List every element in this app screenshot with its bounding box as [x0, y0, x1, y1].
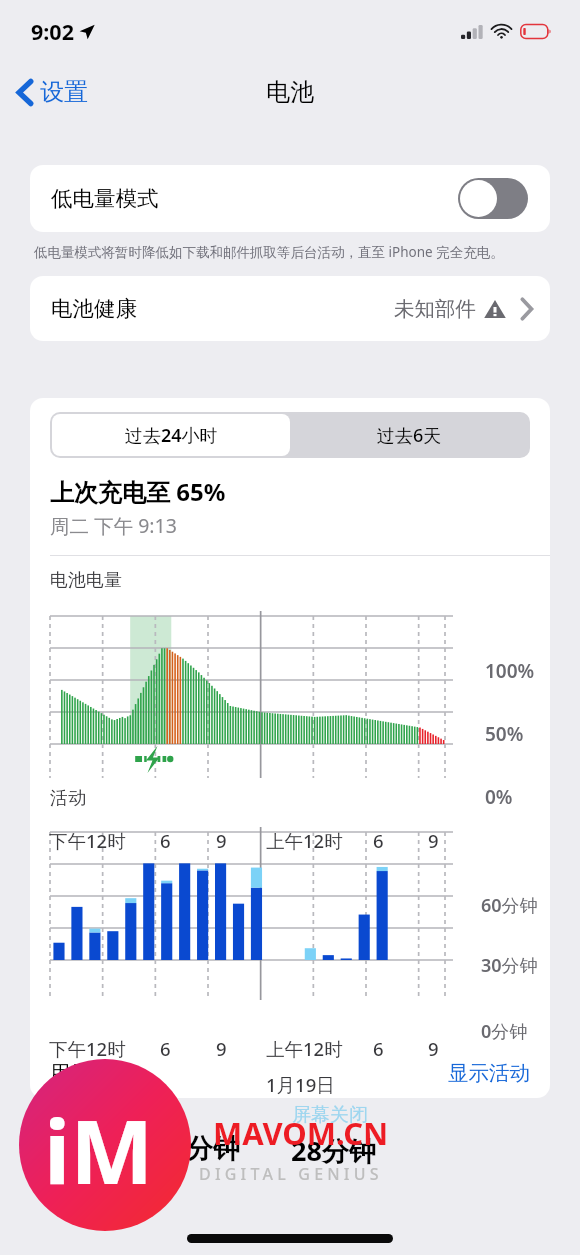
button[interactable]: 显示活动 [448, 1060, 530, 1086]
staticText: 显示活动 [448, 1060, 530, 1086]
staticText: 9:02 [31, 17, 74, 46]
staticText: MAVOM.CN [213, 1112, 389, 1154]
staticText: 60分钟 [481, 893, 538, 918]
staticText: 6 [373, 828, 384, 853]
staticText: 9 [216, 828, 227, 853]
staticText: 上午12时 [266, 828, 343, 853]
staticText: 电池电量 [50, 569, 122, 592]
button[interactable]: 过去6天 [290, 414, 528, 456]
staticText: 6 [160, 828, 171, 853]
staticText: 用量 [50, 1060, 91, 1086]
staticText: 未知部件 [394, 296, 476, 322]
staticText: iM [44, 1090, 154, 1210]
staticText: 屏幕关闭 [292, 1103, 368, 1127]
staticText: 设置 [40, 77, 88, 107]
button[interactable]: 电池健康 [30, 276, 550, 341]
staticText: 上次充电至 65% [50, 475, 226, 508]
button[interactable]: 低电量模式开关 [458, 178, 528, 219]
staticText: 上午12时 [266, 1036, 343, 1061]
staticText: 6 [160, 1036, 171, 1061]
staticText: 电池 [266, 77, 314, 107]
button[interactable]: 低电量模式 [30, 165, 550, 232]
staticText: 9 [428, 1036, 439, 1061]
staticText: 6 [373, 1036, 384, 1061]
staticText: 100% [485, 658, 535, 684]
staticText: 下午12时 [49, 828, 126, 853]
staticText: 活动 [50, 787, 86, 810]
button[interactable]: 设置 [0, 69, 102, 115]
staticText: 周二 下午 9:13 [50, 512, 177, 539]
staticText: 低电量模式将暂时降低如下载和邮件抓取等后台活动，直至 iPhone 完全充电。 [34, 243, 504, 261]
staticText: 28分钟 [291, 1132, 376, 1169]
staticText: 1月19日 [266, 1072, 335, 1097]
staticText: 0分钟 [481, 1019, 528, 1044]
staticText: 9 [216, 1036, 227, 1061]
staticText: 分钟 [186, 1132, 240, 1166]
staticText: 过去24小时 [125, 423, 218, 448]
staticText: 50% [485, 721, 524, 747]
staticText: 30分钟 [481, 953, 538, 978]
staticText: DIGITAL GENIUS [199, 1163, 383, 1185]
staticText: 过去6天 [377, 423, 442, 448]
staticText: 9 [428, 828, 439, 853]
staticText: 电池健康 [51, 295, 137, 322]
staticText: 下午12时 [49, 1036, 126, 1061]
staticText: 0% [485, 784, 513, 810]
staticText: 低电量模式 [51, 185, 159, 212]
button[interactable]: 过去24小时 [52, 414, 290, 456]
